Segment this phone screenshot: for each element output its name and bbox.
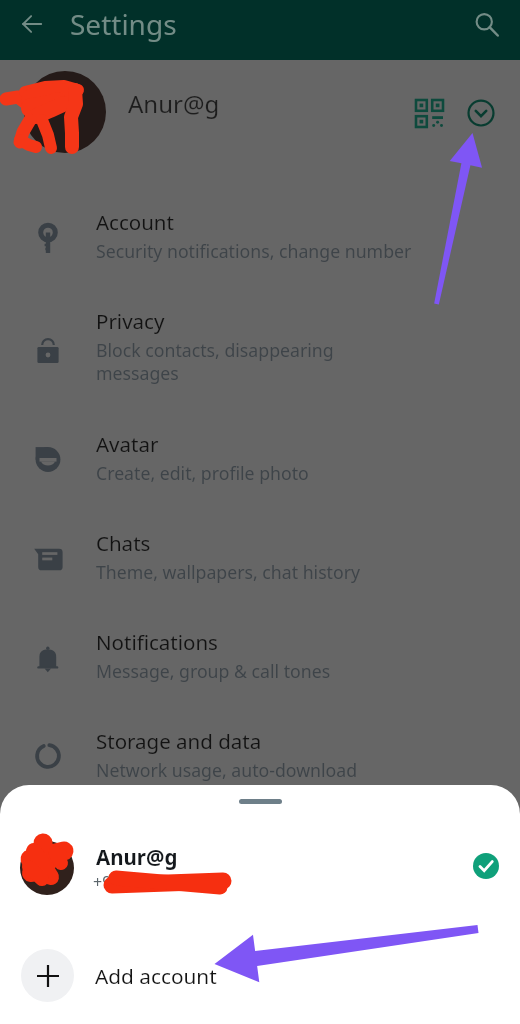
button[interactable]: Privacy xyxy=(0,285,520,408)
staticText: Storage and data xyxy=(96,727,262,755)
staticText: Theme, wallpapers, chat history xyxy=(96,560,361,584)
staticText: Account xyxy=(96,208,174,236)
staticText: Privacy xyxy=(96,307,165,335)
staticText: +91 98765 43213 xyxy=(93,871,221,893)
staticText: Notifications xyxy=(96,628,218,656)
staticText: Create, edit, profile photo xyxy=(96,461,309,485)
button[interactable]: Back xyxy=(10,2,54,46)
staticText: Avatar xyxy=(96,430,159,458)
button[interactable]: Add account xyxy=(0,925,520,1024)
button[interactable]: Account xyxy=(0,186,520,285)
staticText: Anur@g xyxy=(128,87,220,120)
button[interactable]: Anur@g xyxy=(0,60,520,165)
button[interactable]: Search xyxy=(464,2,508,46)
staticText: Anur@g xyxy=(96,843,178,871)
staticText: Settings xyxy=(70,5,177,43)
button[interactable]: Anur@g xyxy=(0,785,520,925)
staticText: Add account xyxy=(95,962,217,990)
staticText: Network usage, auto-download xyxy=(96,758,358,782)
staticText: Message, group & call tones xyxy=(96,659,331,683)
button[interactable]: QR code xyxy=(407,91,451,135)
button[interactable]: Switch account xyxy=(459,91,503,135)
button[interactable]: Storage and data xyxy=(0,705,520,804)
button[interactable]: Notifications xyxy=(0,606,520,705)
button[interactable]: Avatar xyxy=(0,408,520,507)
staticText: Block contacts, disappearing messages xyxy=(96,338,334,386)
button[interactable]: Chats xyxy=(0,507,520,606)
staticText: Chats xyxy=(96,529,151,557)
staticText: Security notifications, change number xyxy=(96,239,412,263)
